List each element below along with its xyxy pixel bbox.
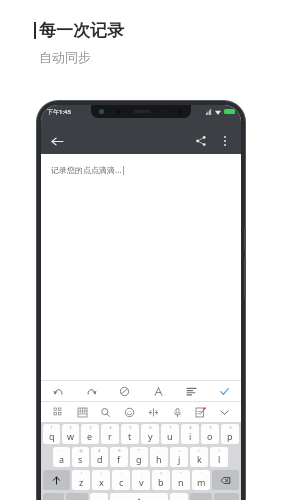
button[interactable]: ': [192, 470, 210, 490]
staticText: z: [79, 476, 84, 488]
staticText: h: [156, 453, 162, 465]
staticText: 自动同步: [39, 49, 91, 65]
button[interactable]: More options: [216, 132, 234, 150]
staticText: u: [167, 430, 173, 442]
staticText: f: [117, 453, 121, 465]
staticText: k: [197, 453, 202, 465]
staticText: 每一次记录: [39, 20, 124, 41]
button[interactable]: Handwriting: [191, 403, 209, 421]
button[interactable]: #: [91, 447, 108, 467]
staticText: 6: [149, 425, 152, 430]
button[interactable]: Collapse: [215, 403, 233, 421]
button[interactable]: 7: [161, 424, 179, 444]
button[interactable]: 4: [101, 424, 119, 444]
staticText: 5: [129, 425, 132, 430]
button[interactable]: ~: [53, 447, 70, 467]
staticText: ~: [60, 448, 63, 453]
button[interactable]: Shift: [43, 470, 70, 490]
staticText: #: [98, 448, 101, 453]
staticText: b: [158, 476, 164, 488]
staticText: p: [227, 430, 233, 442]
button[interactable]: .: [170, 493, 188, 500]
button[interactable]: !: [72, 470, 90, 490]
staticText: c: [119, 476, 124, 488]
button[interactable]: 2: [62, 424, 79, 444]
button[interactable]: Backspace: [212, 470, 239, 490]
staticText: g: [136, 453, 142, 465]
button[interactable]: ): [210, 447, 228, 467]
staticText: @: [79, 448, 83, 453]
button[interactable]: 5: [121, 424, 139, 444]
staticText: ): [218, 448, 220, 453]
button[interactable]: @: [72, 447, 89, 467]
staticText: 9: [209, 425, 212, 430]
staticText: r: [108, 430, 112, 442]
button[interactable]: ": [172, 470, 190, 490]
staticText: l: [218, 453, 221, 465]
button[interactable]: Redo: [82, 382, 100, 400]
button[interactable]: 3: [81, 424, 99, 444]
staticText: (: [198, 448, 200, 453]
staticText: 2: [69, 425, 72, 430]
staticText: q: [49, 430, 55, 442]
button[interactable]: ;: [132, 470, 150, 490]
button[interactable]: Color: [115, 382, 133, 400]
button[interactable]: Undo: [49, 382, 67, 400]
button[interactable]: Align: [182, 382, 200, 400]
staticText: -: [158, 448, 160, 453]
button[interactable]: 8: [181, 424, 199, 444]
staticText: ": [180, 471, 182, 476]
staticText: 8: [189, 425, 192, 430]
button[interactable]: Microphone: [168, 403, 186, 421]
staticText: 7: [169, 425, 172, 430]
staticText: a: [59, 453, 65, 465]
button[interactable]: /: [92, 470, 110, 490]
button[interactable]: -: [150, 447, 168, 467]
button[interactable]: 0: [221, 424, 239, 444]
button[interactable]: Font: [149, 382, 167, 400]
staticText: i: [189, 430, 192, 442]
button[interactable]: (: [190, 447, 208, 467]
staticText: o: [207, 430, 213, 442]
staticText: t: [128, 430, 132, 442]
staticText: 4: [109, 425, 112, 430]
button[interactable]: Back: [48, 132, 66, 150]
button[interactable]: Grid: [49, 403, 67, 421]
staticText: 1: [50, 425, 53, 430]
staticText: j: [178, 453, 181, 465]
staticText: s: [78, 453, 83, 465]
button[interactable]: ?: [152, 470, 170, 490]
button[interactable]: Share: [192, 132, 210, 150]
button[interactable]: 6: [141, 424, 159, 444]
button[interactable]: 1: [43, 424, 60, 444]
button[interactable]: Emoji: [120, 403, 138, 421]
button[interactable]: 9: [201, 424, 219, 444]
staticText: +: [178, 448, 181, 453]
staticText: !: [81, 471, 82, 476]
button[interactable]: *: [130, 447, 148, 467]
button[interactable]: Done: [215, 382, 233, 400]
button[interactable]: Search: [96, 403, 114, 421]
staticText: w: [67, 430, 75, 442]
button[interactable]: :: [112, 470, 130, 490]
button[interactable]: +: [170, 447, 188, 467]
staticText: d: [97, 453, 103, 465]
staticText: 下午1:45: [47, 108, 71, 116]
button[interactable]: %: [110, 447, 128, 467]
button[interactable]: Keyboard: [73, 403, 91, 421]
staticText: m: [197, 476, 206, 488]
staticText: /: [100, 471, 102, 476]
staticText: ?: [160, 471, 162, 476]
staticText: 0: [229, 425, 232, 430]
button[interactable]: Space: [110, 493, 168, 500]
staticText: 记录您的点点滴滴...|: [51, 164, 126, 175]
button[interactable]: ,: [90, 493, 108, 500]
button[interactable]: Voice input: [144, 403, 162, 421]
